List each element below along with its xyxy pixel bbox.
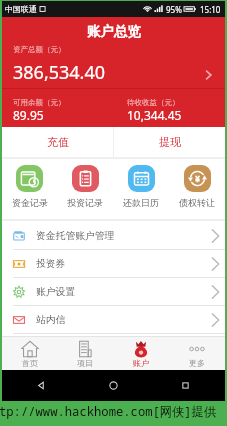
staticText: 账户: [133, 358, 149, 368]
staticText: 首页: [22, 358, 38, 368]
other: Back: [36, 380, 47, 391]
staticText: 资金记录: [12, 197, 48, 208]
staticText: 待收收益（元）: [127, 98, 180, 107]
staticText: 89.95: [13, 107, 44, 123]
button[interactable]: 还款日历: [113, 159, 169, 219]
staticText: 充值: [47, 135, 69, 149]
button[interactable]: 更多: [169, 337, 225, 370]
button[interactable]: 账户: [113, 337, 169, 370]
button[interactable]: 充值: [2, 127, 113, 157]
staticText: 还款日历: [123, 197, 159, 208]
staticText: 投资券: [36, 258, 66, 270]
button[interactable]: 资金记录: [2, 159, 57, 219]
button[interactable]: 资产总额（元）: [2, 39, 225, 88]
button[interactable]: 债权转让: [169, 159, 225, 219]
other: Recents: [180, 380, 191, 391]
staticText: 95%: [166, 4, 182, 15]
button[interactable]: 投资记录: [57, 159, 113, 219]
other: Home: [108, 380, 119, 391]
button[interactable]: 资金托管账户管理: [2, 222, 225, 249]
staticText: 10,344.45: [127, 107, 182, 123]
staticText: 提现: [159, 135, 181, 149]
staticText: 账户总览: [87, 23, 141, 40]
staticText: 站内信: [36, 314, 66, 326]
button[interactable]: 项目: [57, 337, 113, 370]
button[interactable]: 站内信: [2, 306, 225, 333]
staticText: 债权转让: [179, 197, 215, 208]
button[interactable]: 首页: [2, 337, 57, 370]
staticText: 可用余额（元）: [13, 98, 66, 107]
staticText: tp://www.hackhome.com[网侠]提供: [0, 403, 216, 420]
button[interactable]: 提现: [114, 127, 225, 157]
staticText: 15:10: [200, 4, 221, 15]
staticText: 386,534.40: [13, 60, 106, 85]
staticText: 中国联通: [5, 4, 37, 14]
staticText: 账户设置: [36, 286, 76, 298]
button[interactable]: 投资券: [2, 250, 225, 277]
staticText: 项目: [77, 358, 93, 368]
staticText: 资金托管账户管理: [36, 230, 115, 242]
staticText: 资产总额（元）: [13, 45, 66, 54]
staticText: 投资记录: [67, 197, 103, 208]
staticText: 更多: [189, 358, 205, 368]
button[interactable]: 账户设置: [2, 278, 225, 305]
